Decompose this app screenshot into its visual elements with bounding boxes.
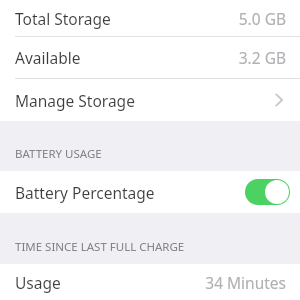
staticText: Usage (15, 272, 61, 293)
staticText: 3.2 GB (238, 47, 286, 68)
staticText: Available (15, 47, 81, 68)
button[interactable]: Usage (0, 264, 300, 300)
staticText: 34 Minutes (205, 272, 286, 293)
button[interactable]: Manage Storage (0, 79, 300, 121)
button[interactable]: Battery Percentage switch, on (245, 179, 290, 205)
staticText: TIME SINCE LAST FULL CHARGE (15, 239, 185, 255)
staticText: BATTERY USAGE (15, 146, 102, 162)
staticText: Total Storage (15, 8, 111, 29)
staticText: Battery Percentage (15, 182, 155, 203)
staticText: 5.0 GB (238, 8, 286, 29)
staticText: Manage Storage (15, 90, 135, 111)
button[interactable]: Total Storage (0, 0, 300, 36)
button[interactable]: Battery Percentage (0, 171, 300, 213)
button[interactable]: Available (0, 37, 300, 78)
other: Manage Storage, open (272, 91, 286, 109)
